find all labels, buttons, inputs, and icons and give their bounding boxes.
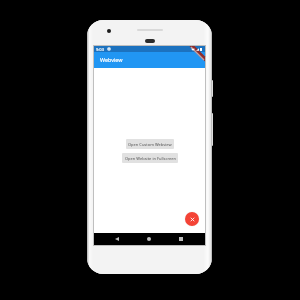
- button[interactable]: Home: [145, 235, 153, 243]
- button[interactable]: Open Custom Webview: [126, 139, 174, 149]
- staticText: Webview: [100, 56, 123, 63]
- staticText: 9:03: [96, 47, 104, 52]
- button[interactable]: Recents: [177, 235, 185, 243]
- button[interactable]: Open Website in Fullscreen: [122, 153, 178, 163]
- staticText: Open Website in Fullscreen: [125, 156, 176, 161]
- button[interactable]: Close: [185, 212, 199, 226]
- staticText: Open Custom Webview: [128, 142, 172, 147]
- button[interactable]: Back: [113, 235, 121, 243]
